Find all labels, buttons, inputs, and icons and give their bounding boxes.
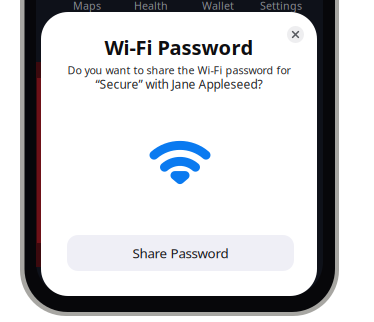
staticText: Do you want to share the Wi-Fi password … bbox=[67, 63, 290, 77]
button[interactable]: Health bbox=[121, 0, 181, 11]
button[interactable]: Settings bbox=[251, 0, 311, 11]
staticText: “Secure” with Jane Appleseed? bbox=[95, 76, 262, 92]
staticText: Health bbox=[134, 0, 168, 13]
staticText: Settings bbox=[260, 0, 302, 13]
button[interactable]: Wallet bbox=[188, 0, 248, 11]
staticText: Wallet bbox=[202, 0, 234, 13]
button[interactable]: Close bbox=[287, 26, 304, 43]
staticText: Share Password bbox=[132, 244, 228, 262]
button[interactable]: Share Password bbox=[67, 235, 294, 271]
button[interactable]: Maps bbox=[57, 0, 117, 11]
staticText: Wi-Fi Password bbox=[104, 34, 253, 61]
staticText: Maps bbox=[73, 0, 101, 13]
